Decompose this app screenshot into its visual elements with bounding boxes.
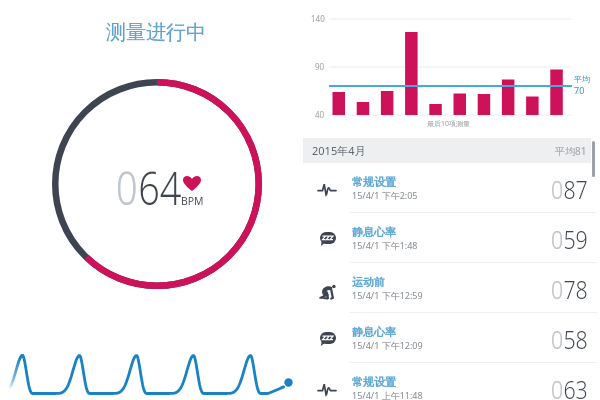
staticText: 40 <box>315 109 325 120</box>
staticText: 测量进行中 <box>106 20 206 45</box>
staticText: 0 <box>551 371 563 400</box>
staticText: 63 <box>563 371 588 400</box>
staticText: 15/4/1 下午1:48 <box>352 239 418 251</box>
staticText: 静息心率 <box>352 325 396 339</box>
staticText: 0 <box>551 271 563 306</box>
button[interactable]: 静息心率 <box>0 213 600 263</box>
staticText: 15/4/1 上午11:48 <box>352 389 423 400</box>
button[interactable]: 常规设置 <box>0 363 600 400</box>
staticText: 常规设置 <box>352 375 396 389</box>
button[interactable]: 常规设置 <box>0 163 600 213</box>
staticText: 15/4/1 下午12:09 <box>352 339 423 351</box>
staticText: 140 <box>311 13 325 24</box>
staticText: 0 <box>116 156 138 219</box>
button[interactable]: 静息心率 <box>0 313 600 363</box>
staticText: 15/4/1 下午12:59 <box>352 289 423 301</box>
staticText: 0 <box>551 171 563 206</box>
staticText: 0 <box>551 221 563 256</box>
staticText: 90 <box>315 61 325 72</box>
staticText: 87 <box>563 171 588 206</box>
staticText: 静息心率 <box>352 225 396 239</box>
staticText: 平均 <box>574 74 590 84</box>
staticText: 最后10项测量 <box>427 119 471 129</box>
staticText: 0 <box>551 321 563 356</box>
staticText: 78 <box>563 271 588 306</box>
staticText: 15/4/1 下午2:05 <box>352 189 418 201</box>
button[interactable]: 运动前 <box>0 263 600 313</box>
staticText: 70 <box>574 84 585 96</box>
staticText: 运动前 <box>352 275 385 289</box>
staticText: 平均81 <box>555 144 587 158</box>
staticText: 59 <box>563 221 588 256</box>
staticText: 2015年4月 <box>312 143 366 158</box>
staticText: BPM <box>181 193 204 208</box>
staticText: 64 <box>138 156 182 219</box>
staticText: 常规设置 <box>352 175 396 189</box>
staticText: 58 <box>563 321 588 356</box>
